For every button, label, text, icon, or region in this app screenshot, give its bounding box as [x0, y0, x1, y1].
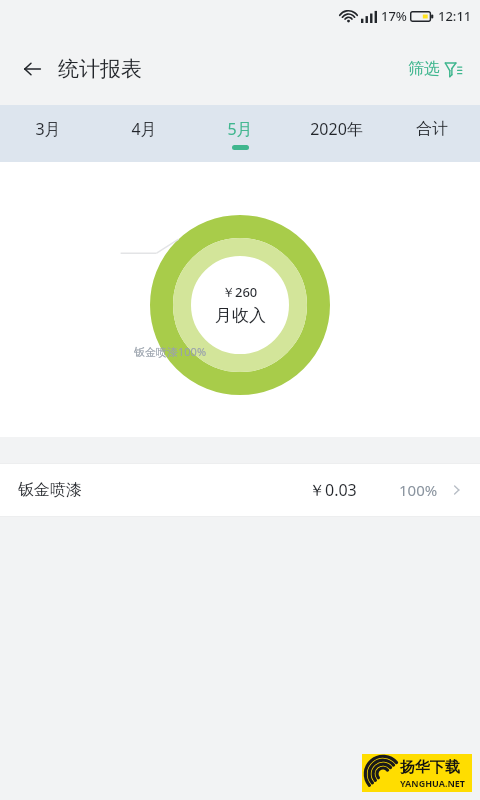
button[interactable]: Back [16, 52, 146, 86]
button[interactable]: 3月 [0, 105, 96, 162]
other: Back [20, 57, 44, 81]
button[interactable]: 筛选 [404, 55, 466, 83]
staticText: YANGHUA.NET [400, 777, 466, 789]
button[interactable]: 4月 [96, 105, 192, 162]
staticText: 100% [399, 480, 438, 500]
staticText: 统计报表 [58, 56, 142, 82]
button[interactable]: 合计 [384, 105, 480, 162]
staticText: 4月 [131, 118, 157, 140]
staticText: ￥260 [222, 283, 258, 301]
staticText: 扬华下载 [400, 758, 460, 777]
staticText: 钣金喷漆100% [134, 344, 207, 359]
staticText: 钣金喷漆 [18, 480, 82, 500]
staticText: 筛选 [408, 59, 440, 79]
button[interactable]: 2020年 [288, 105, 384, 162]
staticText: 合计 [416, 119, 448, 139]
staticText: 2020年 [310, 118, 363, 140]
staticText: ￥0.03 [309, 479, 357, 501]
staticText: 月收入 [215, 305, 266, 326]
button[interactable]: 5月 [192, 105, 288, 162]
staticText: 5月 [227, 118, 253, 140]
staticText: 17% [381, 7, 407, 25]
staticText: 12:11 [438, 7, 472, 25]
staticText: 3月 [35, 118, 61, 140]
button[interactable]: 钣金喷漆 [0, 464, 480, 516]
